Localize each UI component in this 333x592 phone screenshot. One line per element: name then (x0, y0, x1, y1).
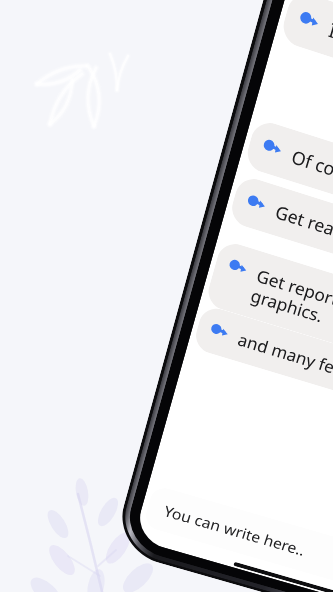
button[interactable]: Of course it is. (259, 134, 333, 204)
staticText: and many features.. (235, 327, 333, 395)
staticText: Get real data. (273, 199, 333, 256)
staticText: You can write here.. (162, 501, 308, 560)
staticText: Of course it is. (289, 144, 333, 204)
button[interactable]: You can write here.. (143, 484, 333, 592)
button[interactable]: and many features.. (207, 319, 333, 395)
staticText: Get reports with beautiful graphics. (248, 263, 333, 366)
button[interactable]: It is a new app. (296, 6, 333, 82)
button[interactable]: Get reports with beautiful graphics. (220, 255, 333, 366)
button[interactable]: Get real data. (244, 190, 333, 256)
staticText: It is a new app. (326, 16, 333, 82)
